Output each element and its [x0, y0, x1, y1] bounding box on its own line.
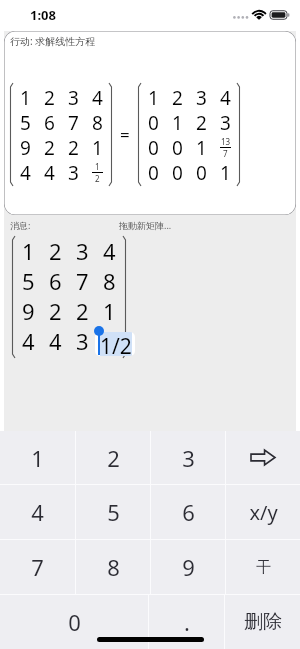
- staticText: 7: [68, 110, 79, 135]
- staticText: 拖動新矩陣...: [119, 219, 172, 231]
- staticText: 7: [223, 148, 228, 159]
- staticText: 0: [148, 160, 159, 185]
- staticText: x/y: [249, 499, 278, 526]
- staticText: 2: [107, 443, 120, 473]
- staticText: 0: [148, 110, 159, 135]
- staticText: 3: [76, 326, 89, 356]
- staticText: 3: [220, 110, 231, 135]
- staticText: 0: [148, 135, 159, 160]
- staticText: 4: [20, 160, 31, 185]
- staticText: 3: [68, 85, 79, 110]
- staticText: 1: [148, 85, 159, 110]
- staticText: 7: [76, 266, 89, 296]
- staticText: 6: [49, 266, 62, 296]
- staticText: 9: [22, 296, 35, 326]
- staticText: 8: [92, 110, 103, 135]
- staticText: 13: [221, 136, 231, 147]
- staticText: 2: [196, 110, 207, 135]
- staticText: 5: [107, 497, 120, 527]
- staticText: 3: [68, 160, 79, 185]
- button[interactable]: 0: [0, 595, 148, 649]
- button[interactable]: 8: [76, 540, 150, 594]
- other: Enter: [250, 449, 276, 466]
- staticText: 4: [103, 236, 116, 266]
- staticText: 行动: 求解线性方程: [10, 34, 96, 48]
- button[interactable]: 删除: [225, 595, 300, 649]
- button[interactable]: 6: [151, 485, 225, 539]
- staticText: 1: [103, 296, 116, 326]
- staticText: 1/2: [100, 332, 132, 356]
- staticText: 3: [196, 85, 207, 110]
- staticText: 1: [172, 110, 183, 135]
- staticText: 5: [22, 266, 35, 296]
- staticText: 2: [49, 236, 62, 266]
- staticText: .: [184, 607, 190, 637]
- staticText: 9: [20, 135, 31, 160]
- button[interactable]: 2: [76, 431, 150, 484]
- staticText: 4: [44, 160, 55, 185]
- staticText: 1: [196, 135, 207, 160]
- staticText: 4: [31, 497, 44, 527]
- staticText: 7: [31, 552, 44, 582]
- button[interactable]: 5: [76, 485, 150, 539]
- button[interactable]: 3: [151, 431, 225, 484]
- staticText: 2: [76, 296, 89, 326]
- button[interactable]: Enter: [226, 431, 300, 484]
- staticText: 8: [103, 266, 116, 296]
- staticText: 2: [44, 135, 55, 160]
- button[interactable]: 7: [0, 540, 75, 594]
- staticText: 1: [92, 135, 103, 160]
- staticText: 2: [95, 173, 100, 184]
- button[interactable]: 4: [0, 485, 75, 539]
- staticText: 1: [220, 160, 231, 185]
- staticText: 消息:: [10, 219, 31, 231]
- staticText: 1:08: [30, 6, 56, 24]
- staticText: 6: [44, 110, 55, 135]
- staticText: 4: [49, 326, 62, 356]
- staticText: 1: [95, 161, 100, 172]
- staticText: 2: [68, 135, 79, 160]
- staticText: 4: [22, 326, 35, 356]
- staticText: 3: [76, 236, 89, 266]
- staticText: 4: [220, 85, 231, 110]
- button[interactable]: 9: [151, 540, 225, 594]
- button[interactable]: 干: [226, 540, 300, 594]
- staticText: 0: [68, 607, 81, 637]
- staticText: 2: [44, 85, 55, 110]
- staticText: 6: [182, 497, 195, 527]
- staticText: =: [120, 123, 130, 146]
- staticText: 1: [31, 443, 44, 473]
- staticText: 0: [172, 135, 183, 160]
- staticText: 4: [92, 85, 103, 110]
- staticText: 8: [107, 552, 120, 582]
- button[interactable]: 1: [0, 431, 75, 484]
- staticText: 0: [172, 160, 183, 185]
- button[interactable]: x/y: [226, 485, 300, 539]
- staticText: 1: [20, 85, 31, 110]
- staticText: 2: [49, 296, 62, 326]
- staticText: 1: [22, 236, 35, 266]
- staticText: 0: [196, 160, 207, 185]
- staticText: 删除: [244, 610, 282, 634]
- staticText: 9: [182, 552, 195, 582]
- button[interactable]: 1/2: [98, 332, 132, 356]
- staticText: 2: [172, 85, 183, 110]
- staticText: 干: [256, 558, 271, 577]
- staticText: 3: [182, 443, 195, 473]
- button[interactable]: .: [149, 595, 224, 649]
- staticText: 5: [20, 110, 31, 135]
